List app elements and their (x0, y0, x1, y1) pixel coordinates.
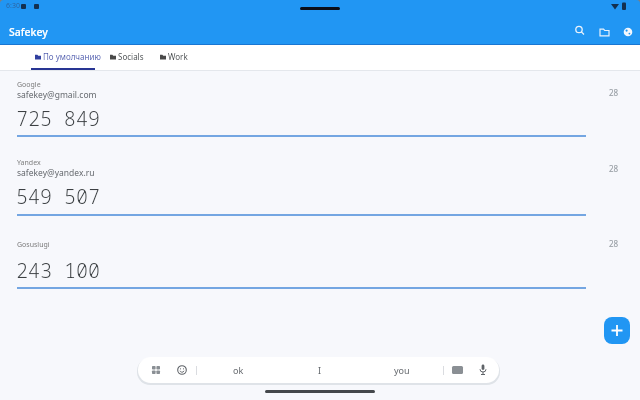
button[interactable] (448, 361, 466, 378)
staticText: I (318, 364, 322, 376)
staticText: 549 507 (16, 183, 100, 210)
button[interactable] (618, 21, 638, 41)
staticText: 6:30 (6, 1, 20, 11)
button[interactable] (147, 361, 164, 378)
button[interactable] (0, 215, 640, 289)
button[interactable] (0, 136, 640, 216)
staticText: Google (17, 80, 41, 90)
staticText: По умолчанию (43, 51, 101, 62)
button[interactable]: ok (197, 357, 279, 383)
staticText: 28 (609, 238, 619, 249)
staticText: Yandex (17, 158, 41, 168)
staticText: Safekey (9, 25, 48, 39)
staticText: ok (233, 364, 244, 376)
staticText: 28 (609, 163, 619, 174)
button[interactable] (0, 70, 640, 137)
staticText: safekey@gmail.com (17, 89, 97, 101)
button[interactable]: Work (154, 45, 196, 70)
staticText: Work (168, 51, 188, 62)
button[interactable]: Socials (104, 45, 150, 70)
staticText: 725 849 (16, 105, 100, 132)
button[interactable] (594, 21, 614, 41)
staticText: 243 100 (16, 257, 100, 284)
button[interactable] (604, 317, 630, 344)
button[interactable] (474, 361, 491, 378)
button[interactable] (173, 361, 190, 378)
staticText: Socials (118, 51, 144, 62)
button[interactable] (570, 21, 590, 41)
button[interactable]: you (361, 357, 443, 383)
button[interactable]: I (279, 357, 361, 383)
staticText: 28 (609, 87, 619, 98)
staticText: you (394, 364, 410, 376)
staticText: safekey@yandex.ru (17, 167, 95, 179)
staticText: Gosuslugi (17, 240, 50, 250)
button[interactable]: По умолчанию (28, 45, 100, 70)
